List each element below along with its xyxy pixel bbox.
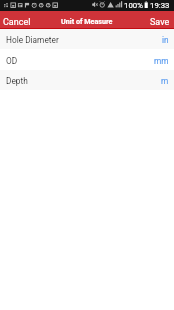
- staticText: mm: [154, 56, 169, 66]
- staticText: OD: [6, 56, 18, 66]
- button[interactable]: Cancel: [0, 12, 34, 27]
- staticText: 100%: [124, 1, 143, 10]
- staticText: m: [161, 76, 169, 86]
- staticText: in: [162, 35, 169, 45]
- staticText: 19:33: [150, 1, 170, 10]
- staticText: Cancel: [3, 17, 31, 28]
- button[interactable]: Hole Diameter: [0, 29, 174, 49]
- staticText: Unit of Measure: [61, 17, 113, 25]
- button[interactable]: OD: [0, 49, 174, 70]
- staticText: Depth: [6, 76, 28, 86]
- staticText: Save: [150, 17, 170, 28]
- button[interactable]: Save: [147, 12, 174, 27]
- button[interactable]: Depth: [0, 70, 174, 90]
- staticText: Hole Diameter: [6, 35, 59, 45]
